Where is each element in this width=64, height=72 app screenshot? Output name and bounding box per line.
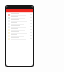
button[interactable] [6,31,33,34]
button[interactable] [6,28,33,31]
button[interactable] [6,16,33,19]
button[interactable] [6,22,33,25]
button[interactable] [6,37,33,40]
button[interactable] [6,34,33,37]
button[interactable] [6,13,33,16]
button[interactable] [6,25,33,28]
button[interactable] [6,19,33,22]
